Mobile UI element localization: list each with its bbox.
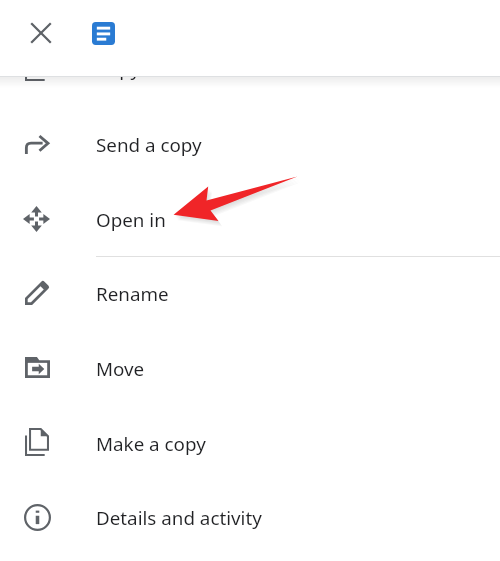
button[interactable]: Copy link: [0, 31, 500, 106]
staticText: Details and activity: [96, 505, 262, 531]
button[interactable]: Open in: [0, 182, 500, 257]
button[interactable]: Close: [19, 11, 63, 55]
button[interactable]: Rename: [0, 256, 500, 331]
button[interactable]: Make a copy: [0, 406, 500, 481]
staticText: Open in: [96, 207, 166, 233]
button[interactable]: Google Docs: [81, 11, 125, 55]
button[interactable]: Move: [0, 331, 500, 406]
button[interactable]: Details and activity: [0, 480, 500, 555]
staticText: Make a copy: [96, 431, 206, 457]
staticText: Move: [96, 356, 145, 382]
staticText: Copy link: [96, 56, 177, 82]
staticText: Send a copy: [96, 132, 202, 158]
staticText: Rename: [96, 281, 169, 307]
button[interactable]: Send a copy: [0, 107, 500, 182]
